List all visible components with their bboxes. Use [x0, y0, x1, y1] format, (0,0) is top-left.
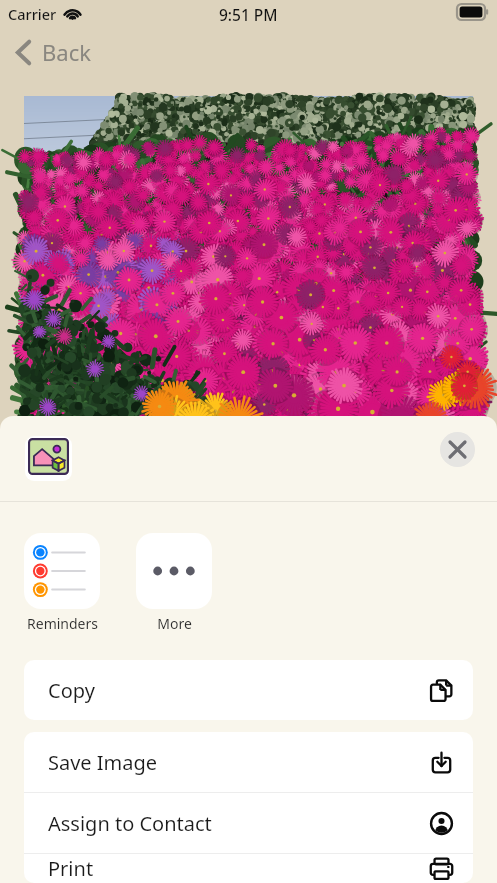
staticText: Print [48, 855, 94, 882]
staticText: Save Image [48, 749, 158, 776]
button[interactable]: Photo preview [25, 436, 72, 481]
button[interactable]: Back [10, 33, 97, 71]
button[interactable]: More [116, 533, 232, 637]
staticText: Copy [48, 677, 95, 704]
staticText: More [157, 614, 192, 633]
button[interactable]: Save Image [24, 732, 473, 792]
staticText: Assign to Contact [48, 810, 212, 837]
button[interactable]: Assign to Contact [24, 793, 473, 853]
staticText: Back [42, 37, 91, 67]
button[interactable]: Close [440, 432, 475, 467]
staticText: Reminders [27, 614, 98, 633]
button[interactable]: Copy [24, 660, 473, 720]
button[interactable]: Reminders [4, 533, 120, 637]
button[interactable]: Print [24, 854, 473, 883]
staticText: 9:51 PM [219, 4, 278, 25]
staticText: Carrier [8, 4, 57, 24]
